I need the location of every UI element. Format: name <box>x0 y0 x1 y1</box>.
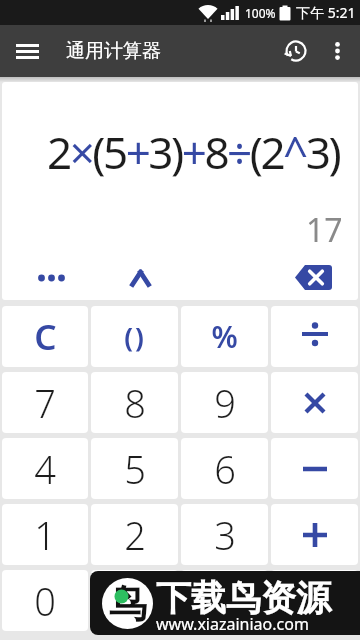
staticText: www.xiazainiao.com <box>156 613 309 635</box>
button[interactable] <box>271 438 358 499</box>
button[interactable] <box>271 306 358 367</box>
button[interactable]: 1 <box>2 504 88 565</box>
staticText: 9 <box>214 377 236 429</box>
button[interactable]: 8 <box>91 372 178 433</box>
staticText: 17 <box>306 208 343 252</box>
staticText: 1 <box>34 509 56 561</box>
button[interactable] <box>271 504 358 565</box>
staticText: = <box>215 578 235 624</box>
button[interactable] <box>34 263 69 293</box>
button[interactable] <box>271 570 358 631</box>
staticText: 3 <box>214 509 236 561</box>
staticText: 2×(5+3)+8÷(2^3) <box>47 122 340 182</box>
staticText: 鸟 <box>109 580 147 628</box>
button[interactable]: . <box>91 570 178 631</box>
button[interactable]: () <box>91 306 178 367</box>
button[interactable] <box>276 31 316 71</box>
button[interactable]: % <box>181 306 268 367</box>
staticText: 8 <box>124 377 146 429</box>
staticText: 下载鸟资源 <box>156 576 331 620</box>
button[interactable] <box>320 34 354 68</box>
staticText: 4 <box>34 443 56 495</box>
button[interactable]: 鸟 <box>90 571 360 635</box>
button[interactable]: 7 <box>2 372 88 433</box>
button[interactable]: 4 <box>2 438 88 499</box>
button[interactable]: 6 <box>181 438 268 499</box>
button[interactable]: C <box>2 306 88 367</box>
button[interactable]: 9 <box>181 372 268 433</box>
staticText: 100% <box>245 5 276 21</box>
staticText: 0 <box>34 575 56 627</box>
button[interactable]: 2 <box>91 504 178 565</box>
staticText: C <box>34 313 57 361</box>
button[interactable] <box>10 34 44 68</box>
button[interactable]: = <box>181 570 268 631</box>
staticText: () <box>124 319 146 354</box>
staticText: 2 <box>124 509 146 561</box>
staticText: 7 <box>34 377 56 429</box>
button[interactable]: 3 <box>181 504 268 565</box>
staticText: 6 <box>214 443 236 495</box>
staticText: 通用计算器 <box>66 39 161 63</box>
button[interactable] <box>271 372 358 433</box>
button[interactable] <box>122 262 158 293</box>
staticText: . <box>130 575 140 627</box>
staticText: % <box>211 316 238 357</box>
staticText: 下午 5:21 <box>296 3 356 22</box>
staticText: 5 <box>124 443 146 495</box>
button[interactable]: 5 <box>91 438 178 499</box>
button[interactable] <box>288 261 338 294</box>
button[interactable]: 0 <box>2 570 88 631</box>
